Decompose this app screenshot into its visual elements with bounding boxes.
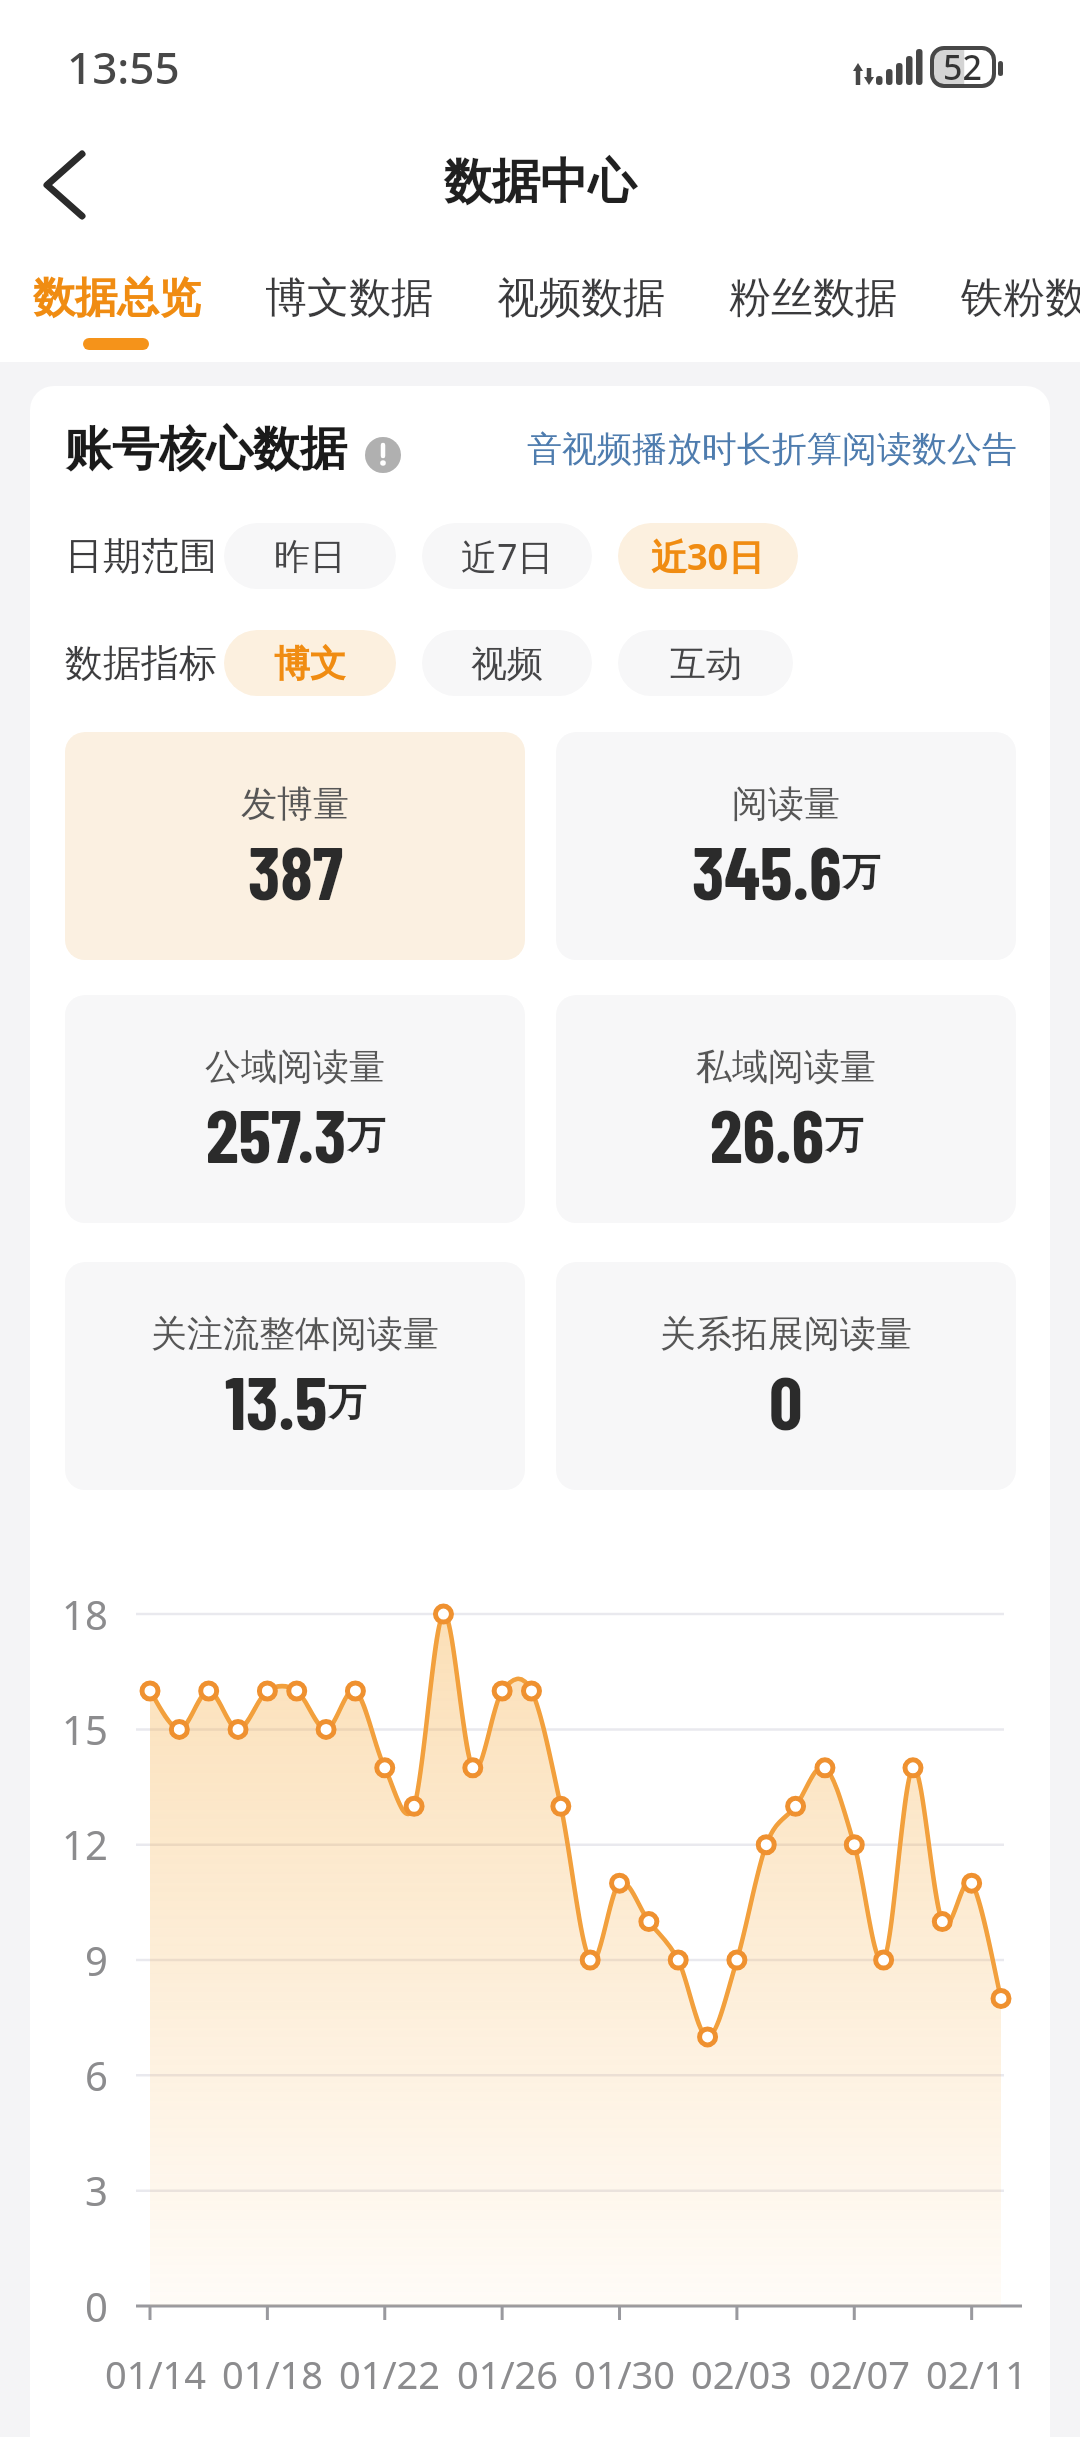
staticText: 博文数据 (265, 272, 433, 325)
button[interactable]: 昨日 (224, 523, 396, 589)
staticText: 数据指标 (65, 639, 217, 687)
staticText: 阅读量 (732, 781, 840, 826)
staticText: 万 (328, 1378, 366, 1426)
button[interactable]: 视频数据 (497, 272, 665, 325)
staticText: 日期范围 (65, 532, 217, 580)
button[interactable]: 粉丝数据 (729, 272, 897, 325)
staticText: 0 (85, 2279, 108, 2333)
staticText: 公域阅读量 (205, 1044, 385, 1089)
button[interactable]: 音视频播放时长折算阅读数公告 (527, 427, 1017, 471)
button[interactable]: 近30日 (618, 523, 798, 589)
button[interactable] (30, 140, 110, 224)
staticText: 视频 (471, 641, 543, 686)
staticText: 01/26 (457, 2348, 559, 2400)
staticText: 关系拓展阅读量 (660, 1311, 912, 1356)
staticText: 数据中心 (444, 152, 636, 212)
staticText: 01/18 (222, 2348, 324, 2400)
staticText: 387 (248, 826, 343, 912)
staticText: 粉丝数据 (729, 272, 897, 325)
button[interactable]: 互动 (618, 630, 793, 696)
staticText: 13:55 (67, 37, 180, 97)
staticText: 近7日 (461, 532, 554, 581)
button[interactable]: 博文 (224, 630, 396, 696)
staticText: 视频数据 (497, 272, 665, 325)
staticText: 万 (347, 1111, 385, 1159)
staticText: 02/03 (691, 2348, 793, 2400)
staticText: 26.6 (710, 1089, 825, 1175)
button[interactable]: 关系拓展阅读量 (556, 1262, 1016, 1490)
staticText: 发博量 (241, 781, 349, 826)
staticText: 13.5 (225, 1356, 328, 1442)
staticText: 万 (842, 848, 880, 896)
staticText: 52 (943, 44, 982, 90)
staticText: 万 (825, 1111, 863, 1159)
staticText: 02/11 (926, 2348, 1028, 2400)
button[interactable]: 数据总览 (33, 272, 201, 325)
button[interactable]: 发博量 (65, 732, 525, 960)
staticText: 博文 (274, 641, 346, 686)
staticText: 6 (85, 2048, 108, 2102)
staticText: 0 (769, 1356, 803, 1442)
staticText: 账号核心数据 (65, 420, 347, 479)
staticText: 数据总览 (33, 272, 201, 325)
button[interactable]: 私域阅读量 (556, 995, 1016, 1223)
button[interactable]: 阅读量 (556, 732, 1016, 960)
staticText: 345.6 (692, 826, 842, 912)
staticText: 01/22 (339, 2348, 441, 2400)
button[interactable]: 博文数据 (265, 272, 433, 325)
button[interactable]: 公域阅读量 (65, 995, 525, 1223)
button[interactable]: 视频 (422, 630, 592, 696)
staticText: 15 (62, 1702, 108, 1756)
staticText: 9 (85, 1933, 108, 1987)
staticText: 02/07 (809, 2348, 911, 2400)
staticText: 昨日 (274, 534, 346, 579)
staticText: 01/14 (105, 2348, 207, 2400)
staticText: 257.3 (206, 1089, 347, 1175)
staticText: 互动 (670, 641, 742, 686)
staticText: 关注流整体阅读量 (151, 1311, 439, 1356)
staticText: 18 (62, 1587, 108, 1641)
staticText: 铁粉数据 (961, 272, 1080, 325)
staticText: 01/30 (574, 2348, 676, 2400)
staticText: 近30日 (651, 532, 765, 581)
button[interactable]: 近7日 (422, 523, 592, 589)
staticText: 3 (85, 2163, 108, 2217)
button[interactable]: 关注流整体阅读量 (65, 1262, 525, 1490)
staticText: 12 (62, 1817, 108, 1871)
button[interactable]: 铁粉数据 (961, 272, 1080, 325)
staticText: 私域阅读量 (696, 1044, 876, 1089)
